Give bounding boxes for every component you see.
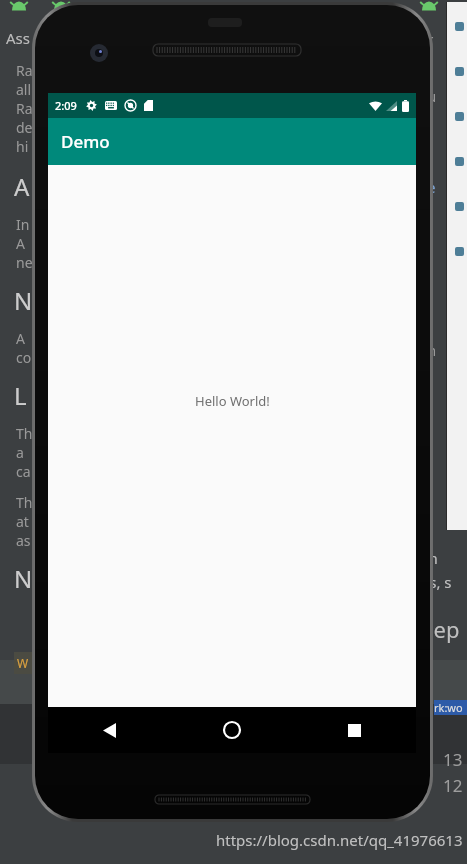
button[interactable]: Demo	[48, 118, 416, 165]
staticText: co	[16, 348, 32, 367]
staticText: A	[16, 329, 25, 348]
staticText: en	[420, 548, 438, 568]
button[interactable]: Home	[170, 707, 293, 753]
staticText: c	[424, 68, 431, 87]
staticText: dep	[420, 614, 460, 644]
staticText: s	[424, 49, 431, 68]
staticText: ir	[424, 30, 434, 49]
staticText: Ra	[16, 61, 33, 80]
button[interactable]: Back	[48, 707, 170, 753]
staticText: li	[424, 140, 432, 159]
staticText: 2:09	[55, 98, 77, 113]
staticText: 12	[443, 774, 463, 797]
staticText: all	[16, 80, 32, 99]
staticText: rk:wo	[434, 700, 463, 715]
staticText: Ra	[16, 99, 33, 118]
staticText: a	[16, 443, 24, 462]
staticText: y	[424, 159, 432, 178]
staticText: Ass	[6, 28, 30, 48]
staticText: Th	[16, 493, 33, 512]
staticText: N	[14, 562, 33, 595]
staticText: W	[17, 655, 29, 671]
staticText: Demo	[61, 130, 110, 153]
staticText: ne	[16, 253, 33, 272]
staticText: lu	[424, 87, 437, 106]
staticText: A	[14, 170, 30, 203]
staticText: hi	[16, 137, 29, 156]
staticText: Th	[16, 424, 33, 443]
staticText: it	[424, 360, 433, 379]
staticText: Hello World!	[195, 392, 270, 410]
staticText: ca	[16, 462, 31, 481]
staticText: in	[424, 341, 437, 360]
staticText: L	[14, 379, 27, 412]
staticText: 13	[443, 748, 463, 771]
staticText: de	[16, 118, 33, 137]
staticText: e	[424, 282, 432, 301]
staticText: N	[14, 284, 33, 317]
staticText: e	[424, 219, 434, 241]
staticText: https://blog.csdn.net/qq_41976613	[216, 830, 463, 850]
staticText: le	[424, 178, 436, 197]
staticText: A	[16, 234, 25, 253]
staticText: at	[16, 512, 29, 531]
staticText: In	[16, 215, 30, 234]
staticText: as	[16, 531, 31, 550]
button[interactable]: Recent apps	[293, 707, 416, 753]
staticText: gs, s	[420, 572, 452, 592]
